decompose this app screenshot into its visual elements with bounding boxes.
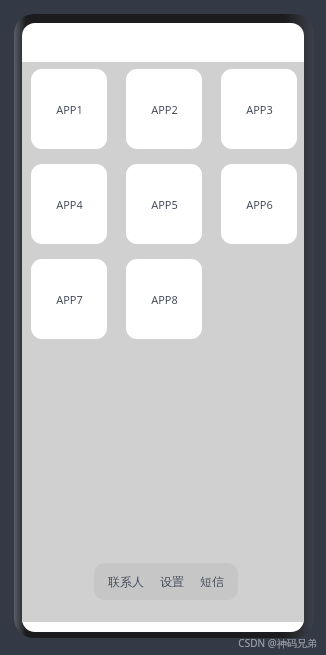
staticText: CSDN @神码兄弟: [238, 636, 317, 650]
button[interactable]: 联系人: [106, 570, 146, 593]
staticText: APP6: [246, 197, 273, 212]
staticText: 联系人: [108, 574, 144, 589]
staticText: APP7: [56, 292, 83, 307]
staticText: APP1: [56, 102, 83, 117]
button[interactable]: APP2: [126, 69, 202, 149]
staticText: 短信: [200, 574, 224, 589]
button[interactable]: APP7: [31, 259, 107, 339]
button[interactable]: APP6: [221, 164, 297, 244]
staticText: 设置: [160, 574, 184, 589]
staticText: APP2: [151, 102, 178, 117]
staticText: APP8: [151, 292, 178, 307]
button[interactable]: APP3: [221, 69, 297, 149]
button[interactable]: 短信: [198, 570, 226, 593]
button[interactable]: APP1: [31, 69, 107, 149]
button[interactable]: APP4: [31, 164, 107, 244]
button[interactable]: 设置: [158, 570, 186, 593]
staticText: APP5: [151, 197, 178, 212]
staticText: APP4: [56, 197, 83, 212]
button[interactable]: APP5: [126, 164, 202, 244]
staticText: APP3: [246, 102, 273, 117]
button[interactable]: APP8: [126, 259, 202, 339]
